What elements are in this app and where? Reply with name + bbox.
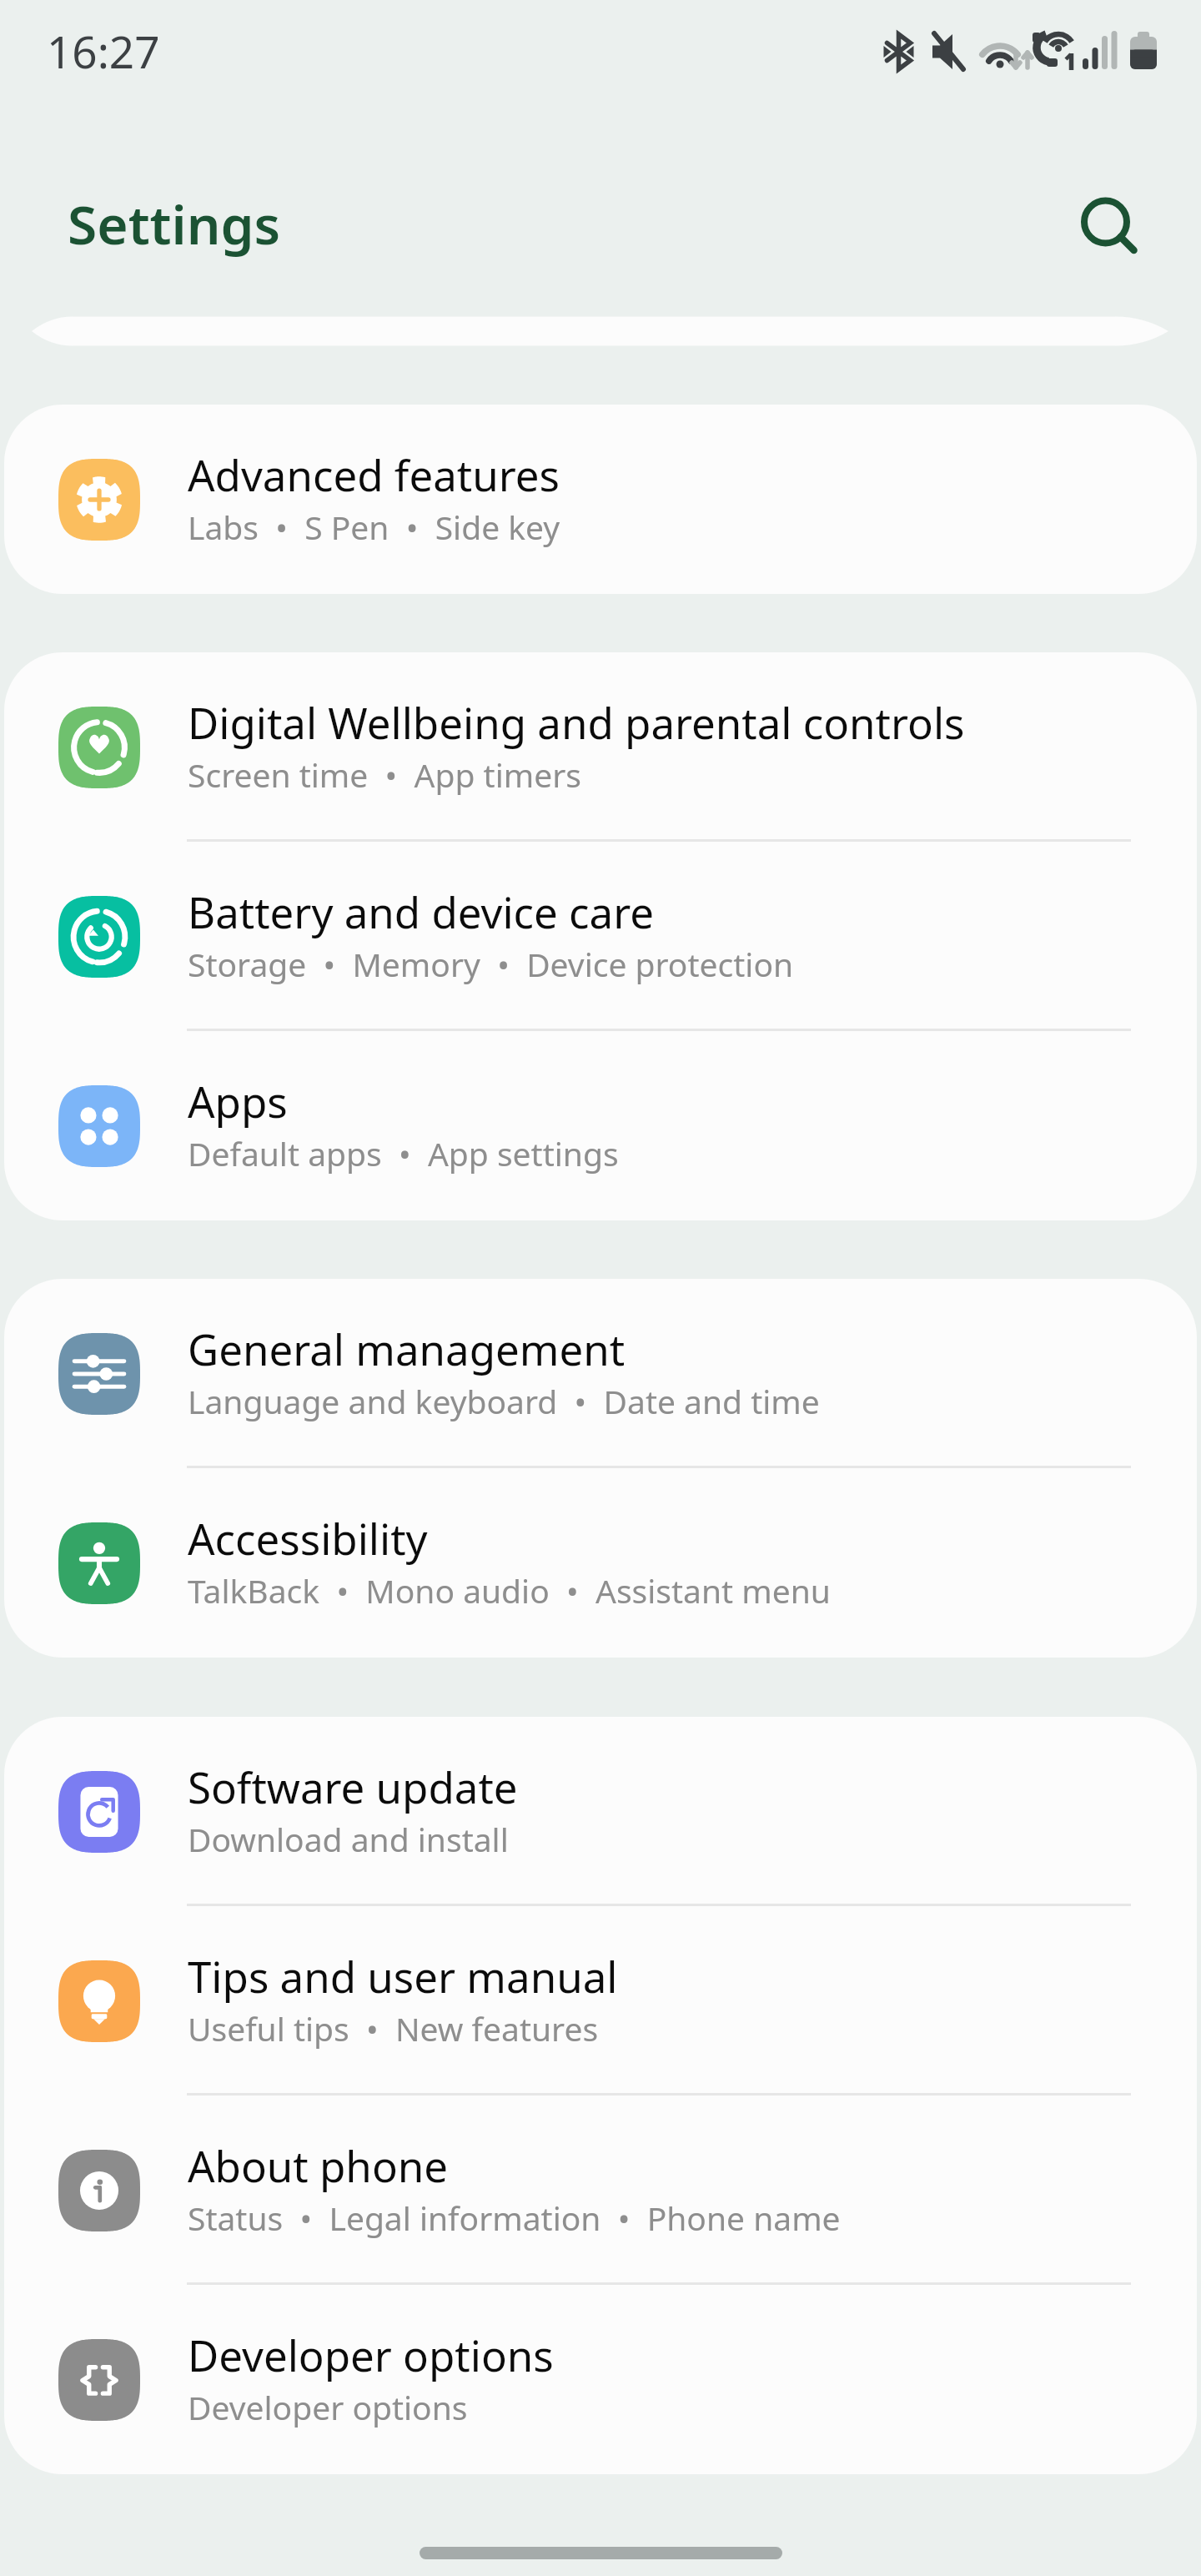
staticText: Language and keyboard • Date and time [188,1379,820,1423]
button[interactable]: Tips and user manual [4,1906,1197,2096]
staticText: Download and install [188,1817,509,1861]
staticText: About phone [188,2136,449,2194]
staticText: Tips and user manual [188,1947,618,2005]
staticText: Storage • Memory • Device protection [188,942,794,986]
button[interactable]: About phone [4,2096,1197,2285]
staticText: Default apps • App settings [188,1131,619,1175]
staticText: Useful tips • New features [188,2006,599,2050]
staticText: Screen time • App timers [188,752,581,797]
button[interactable]: Search [1055,172,1155,272]
button[interactable]: Accessibility [4,1468,1197,1658]
staticText: Software update [188,1758,518,1815]
button[interactable]: Developer options [4,2285,1197,2474]
staticText: Advanced features [188,445,560,503]
staticText: Status • Legal information • Phone name [188,2196,841,2240]
button[interactable]: General management [4,1279,1197,1468]
staticText: Apps [188,1072,288,1130]
button[interactable]: Software update [4,1717,1197,1906]
button[interactable]: Apps [4,1031,1197,1220]
staticText: General management [188,1320,626,1377]
staticText: Developer options [188,2385,468,2429]
button[interactable]: Digital Wellbeing and parental controls [4,652,1197,842]
staticText: TalkBack • Mono audio • Assistant menu [188,1568,831,1613]
button[interactable]: Search settings [0,316,1201,346]
staticText: Accessibility [188,1509,428,1567]
staticText: Settings [68,188,281,260]
staticText: Developer options [188,2326,554,2383]
staticText: Battery and device care [188,883,655,940]
button[interactable]: Battery and device care [4,842,1197,1031]
staticText: Digital Wellbeing and parental controls [188,693,965,751]
button[interactable]: Advanced features [4,405,1197,594]
staticText: Labs • S Pen • Side key [188,505,560,549]
staticText: 16:27 [47,21,160,81]
